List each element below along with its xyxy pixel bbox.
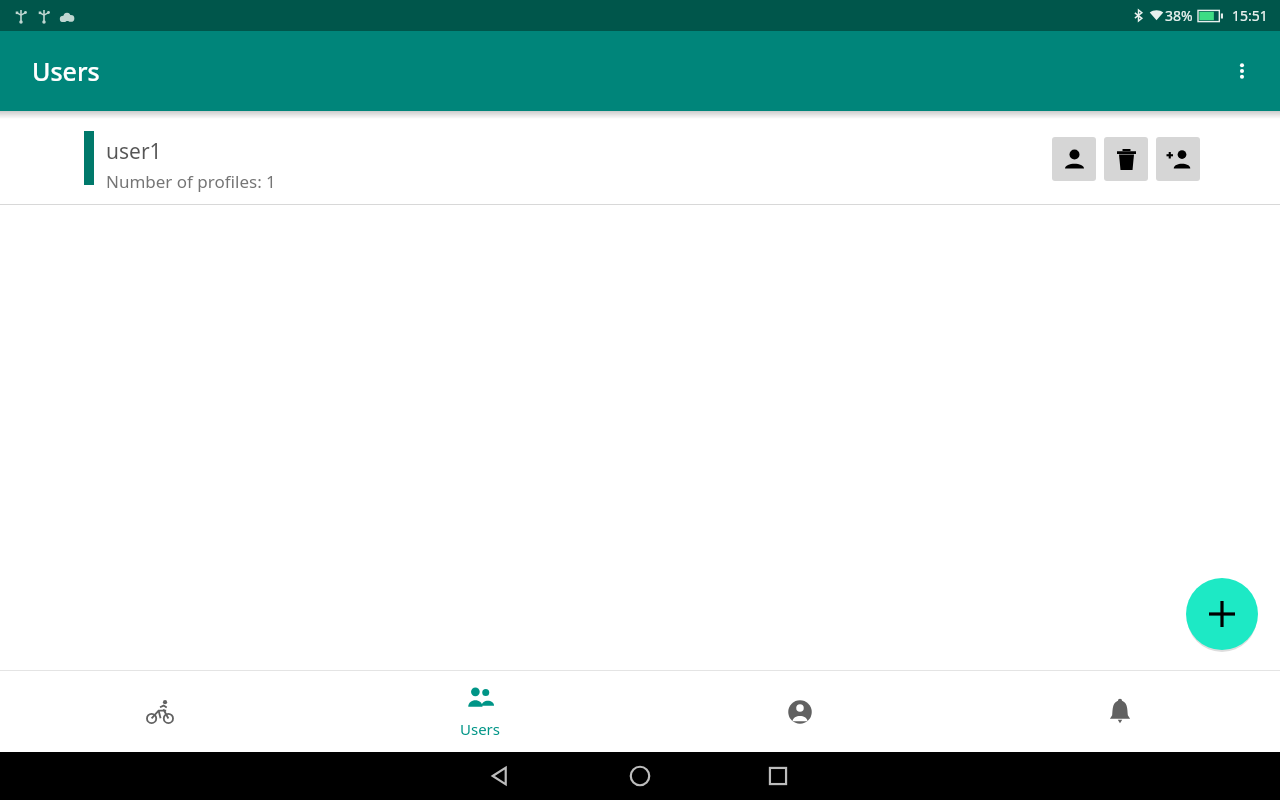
staticText: Number of profiles: 1	[106, 170, 276, 193]
button[interactable]: View user	[1052, 137, 1096, 181]
button[interactable]: Rides	[0, 671, 320, 752]
staticText: Users	[460, 719, 500, 739]
button[interactable]: Notifications	[960, 671, 1280, 752]
staticText: 38%	[1165, 6, 1193, 25]
button[interactable]: Add	[1186, 578, 1258, 650]
button[interactable]: Add profile	[1156, 137, 1200, 181]
button[interactable]: Account	[640, 671, 960, 752]
staticText: user1	[106, 137, 162, 166]
button[interactable]: Delete user	[1104, 137, 1148, 181]
staticText: 15:51	[1232, 6, 1268, 25]
button[interactable]: More options	[1220, 49, 1264, 93]
button[interactable]: user1	[0, 119, 1280, 204]
button[interactable]: Users	[320, 671, 640, 752]
staticText: Users	[32, 54, 100, 88]
